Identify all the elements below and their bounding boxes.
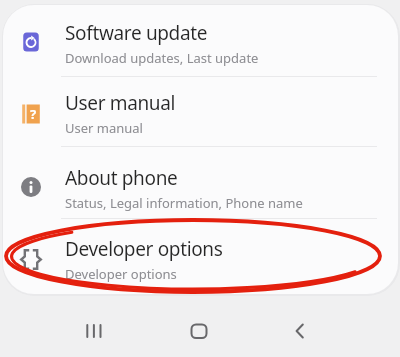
staticText: ? [30,105,37,123]
button[interactable]: Software update [3,5,398,76]
staticText: User manual [65,119,143,137]
staticText: Software update [65,20,208,46]
button[interactable] [276,307,324,355]
staticText: Developer options [65,236,223,262]
button[interactable]: Developer options [3,219,398,294]
staticText: Download updates, Last update [65,49,259,67]
button[interactable]: ? [3,77,398,146]
staticText: Developer options [65,265,177,283]
button[interactable]: About phone [3,147,398,218]
button[interactable] [175,307,223,355]
staticText: User manual [65,90,176,116]
button[interactable] [70,307,118,355]
staticText: About phone [65,165,178,191]
staticText: Status, Legal information, Phone name [65,194,303,212]
